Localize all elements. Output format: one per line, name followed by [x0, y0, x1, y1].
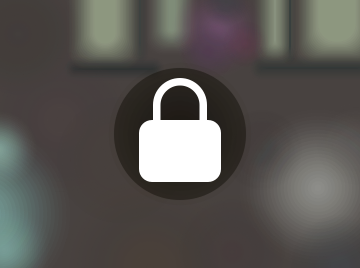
button[interactable]: Content locked	[0, 0, 360, 268]
